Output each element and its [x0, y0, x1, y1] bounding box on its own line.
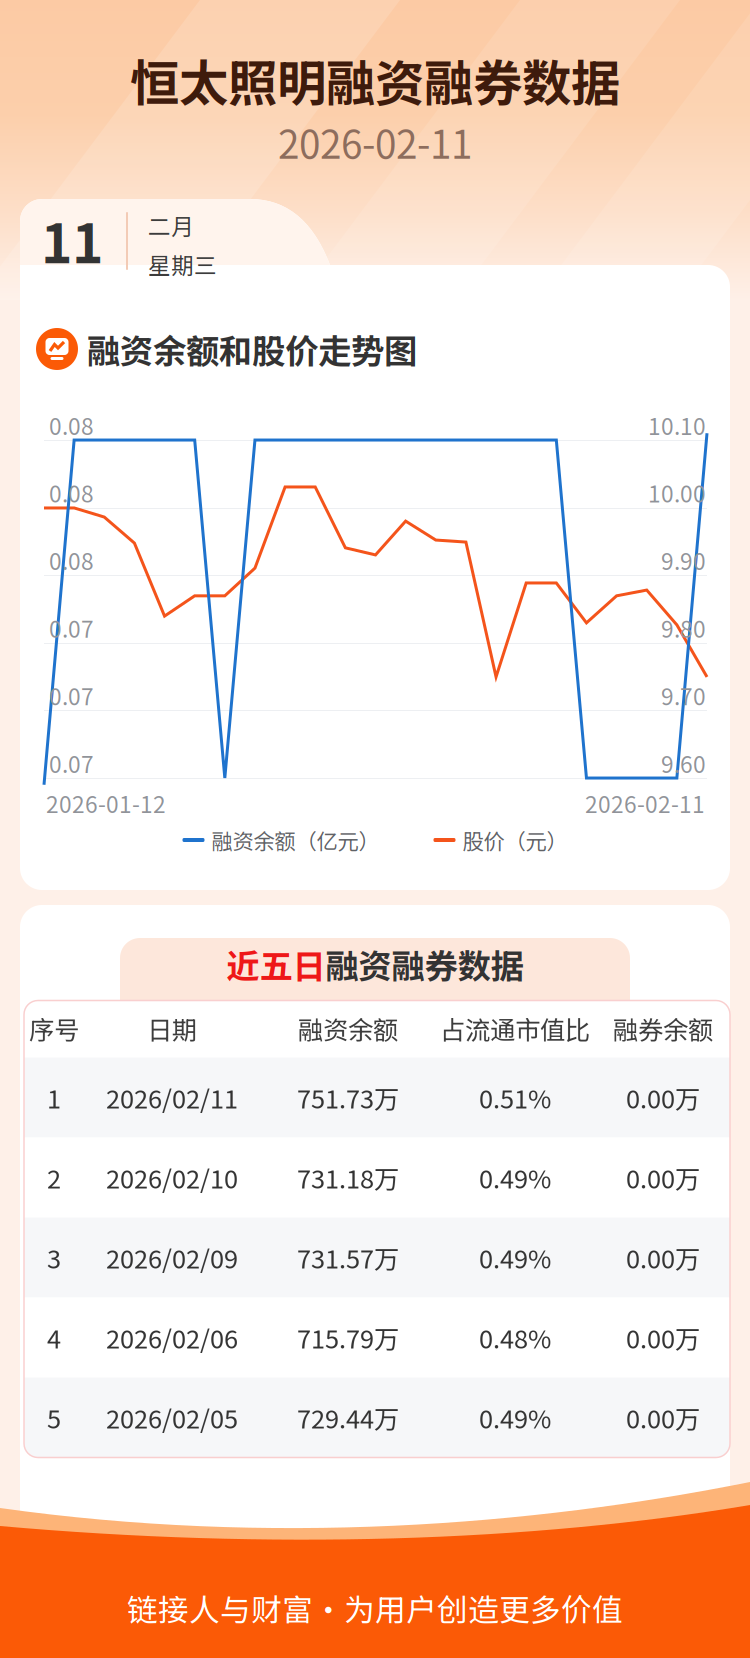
staticText: 0.51%: [479, 1079, 551, 1116]
staticText: 10.10: [648, 409, 706, 441]
staticText: 9.60: [661, 747, 706, 779]
staticText: 751.73万: [297, 1079, 399, 1116]
staticText: 0.07: [49, 611, 94, 644]
staticText: 链接人与财富·为用户创造更多价值: [127, 1586, 623, 1630]
staticText: 0.08: [49, 409, 94, 441]
staticText: 融资余额和股价走势图: [87, 325, 417, 373]
staticText: 2026/02/09: [106, 1239, 238, 1276]
staticText: 融资余额: [298, 1010, 398, 1047]
staticText: 11: [41, 201, 103, 279]
staticText: 3: [47, 1239, 61, 1276]
staticText: 星期三: [148, 248, 217, 280]
staticText: 0.49%: [479, 1399, 551, 1436]
staticText: 731.57万: [297, 1239, 399, 1276]
staticText: 0.00万: [626, 1399, 700, 1436]
staticText: 2026/02/06: [106, 1319, 238, 1356]
staticText: 序号: [29, 1010, 79, 1047]
staticText: 0.48%: [479, 1319, 551, 1356]
staticText: 融资融券数据: [325, 940, 523, 988]
staticText: 0.49%: [479, 1239, 551, 1276]
staticText: 0.07: [49, 679, 94, 712]
staticText: 占流通市值比: [440, 1010, 590, 1047]
staticText: 729.44万: [297, 1399, 399, 1436]
staticText: 9.90: [661, 544, 706, 577]
staticText: 0.00万: [626, 1159, 700, 1196]
staticText: 0.08: [49, 544, 94, 577]
staticText: 0.00万: [626, 1079, 700, 1116]
staticText: 2026-02-11: [278, 114, 472, 170]
staticText: 4: [47, 1319, 61, 1356]
staticText: 10.00: [648, 476, 706, 509]
staticText: 二月: [148, 209, 194, 241]
staticText: 日期: [147, 1010, 197, 1047]
staticText: 恒太照明融资融券数据: [130, 44, 620, 116]
staticText: 近五日: [226, 940, 325, 988]
staticText: 9.70: [661, 679, 706, 712]
staticText: 9.80: [661, 611, 706, 644]
staticText: 1: [47, 1079, 61, 1116]
staticText: 0.49%: [479, 1159, 551, 1196]
staticText: 2026/02/10: [106, 1159, 238, 1196]
staticText: 融券余额: [613, 1010, 713, 1047]
staticText: 731.18万: [297, 1159, 399, 1196]
staticText: 0.00万: [626, 1319, 700, 1356]
staticText: 0.07: [49, 747, 94, 779]
staticText: 0.08: [49, 476, 94, 509]
staticText: 2026/02/11: [106, 1079, 238, 1116]
staticText: 股价（元）: [462, 825, 567, 855]
staticText: 2: [47, 1159, 61, 1196]
staticText: 0.00万: [626, 1239, 700, 1276]
staticText: 2026-02-11: [585, 787, 705, 819]
staticText: 5: [47, 1399, 61, 1436]
staticText: 2026-01-12: [46, 787, 166, 819]
staticText: 融资余额（亿元）: [211, 825, 379, 855]
staticText: 2026/02/05: [106, 1399, 238, 1436]
staticText: 715.79万: [297, 1319, 399, 1356]
